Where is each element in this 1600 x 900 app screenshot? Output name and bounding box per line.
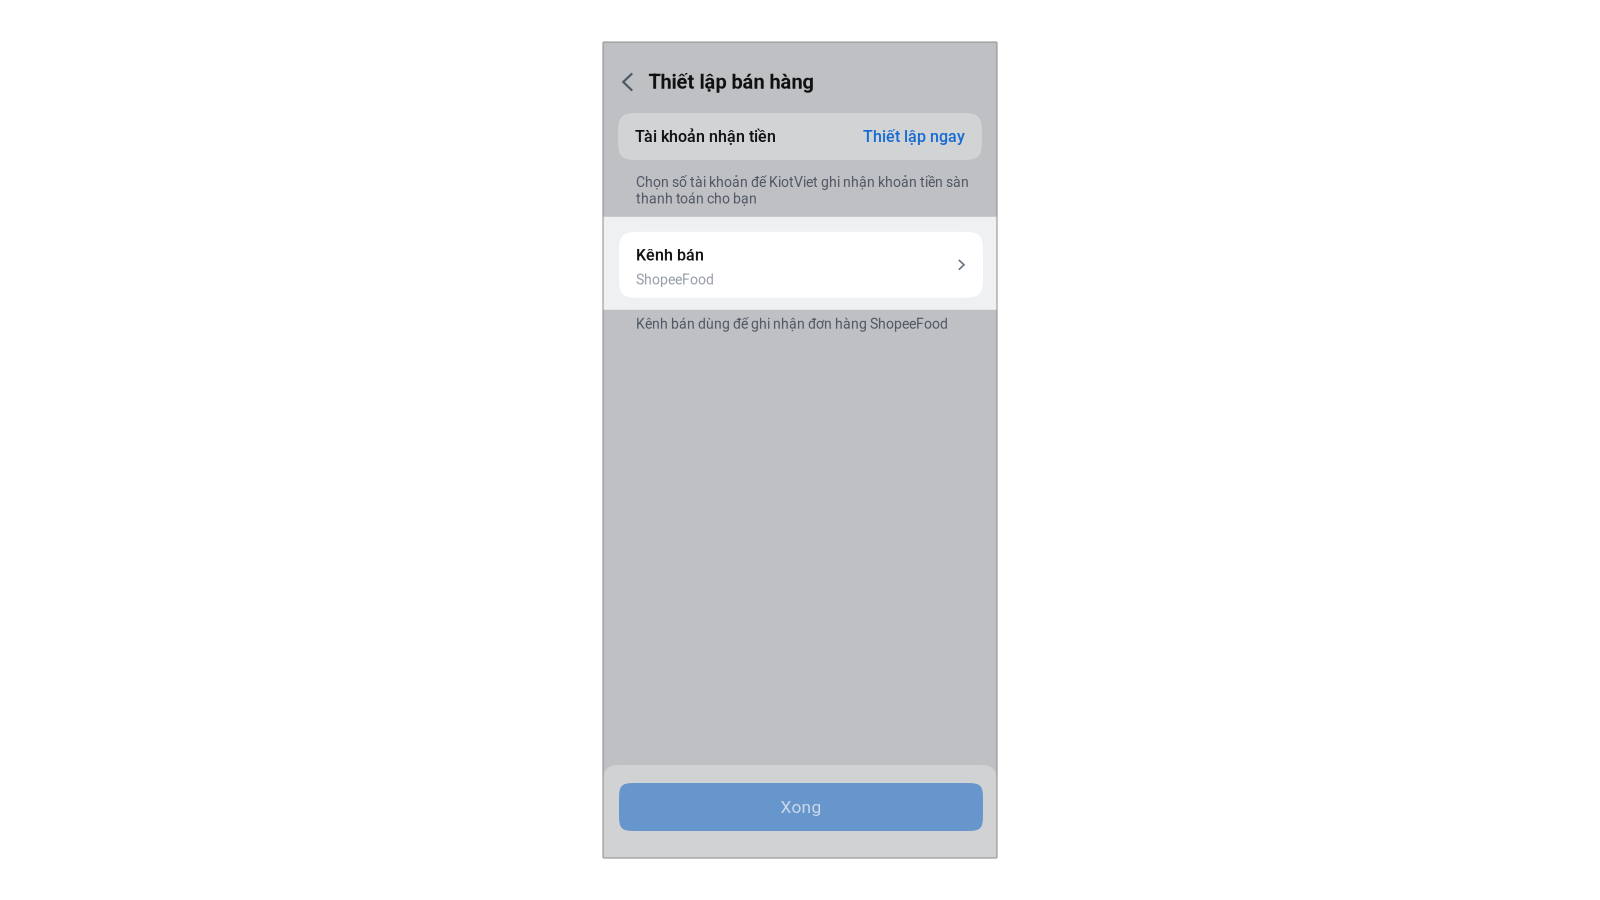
button[interactable]: Kênh bán — [603, 217, 997, 310]
staticText: Chọn số tài khoản để KiotViet ghi nhận k… — [636, 174, 969, 207]
staticText: Xong — [780, 797, 821, 817]
button[interactable]: Tài khoản nhận tiền — [618, 113, 982, 160]
button[interactable]: Back — [603, 61, 648, 103]
staticText: Thiết lập bán hàng — [648, 70, 813, 94]
staticText: Kênh bán dùng để ghi nhận đơn hàng Shope… — [636, 316, 948, 332]
staticText: ShopeeFood — [636, 271, 714, 288]
staticText: Kênh bán — [636, 246, 704, 264]
button[interactable]: Xong — [619, 783, 983, 831]
staticText: Thiết lập ngay — [863, 127, 965, 146]
staticText: Tài khoản nhận tiền — [635, 127, 776, 146]
